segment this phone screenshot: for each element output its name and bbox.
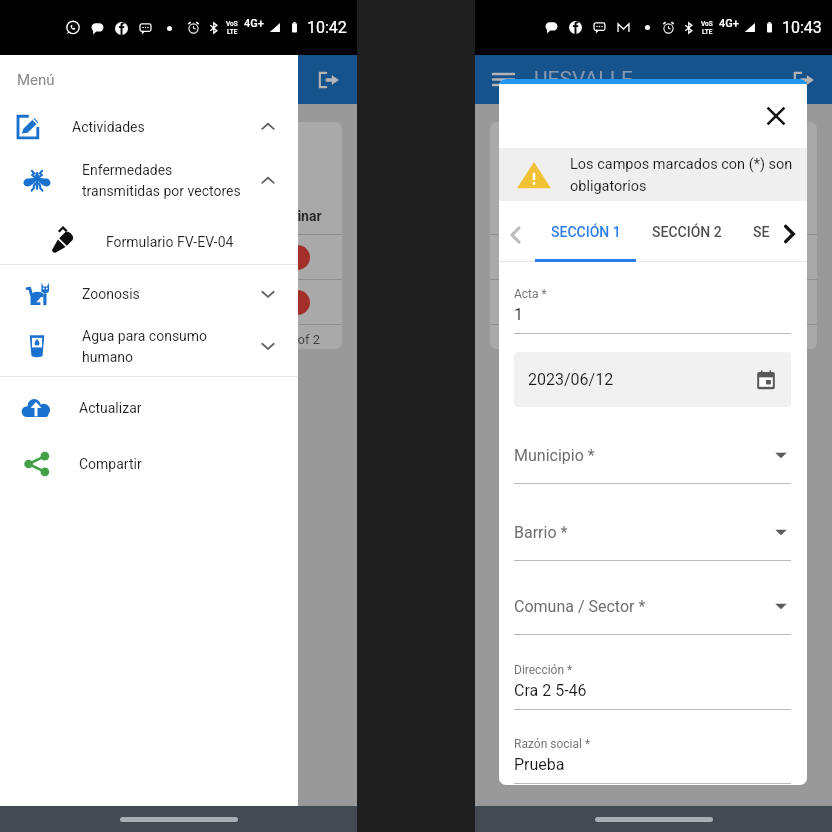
button[interactable]: Close [761, 101, 791, 131]
staticText: VoS [701, 20, 713, 28]
button[interactable]: Actividades [0, 101, 298, 153]
staticText: Compartir [79, 456, 142, 472]
button[interactable]: Logout [791, 68, 815, 92]
button[interactable]: Agua para consumo humano [0, 316, 298, 376]
staticText: LTE [702, 28, 713, 36]
button[interactable]: Razón social * [514, 737, 791, 784]
staticText: SECCIÓN 3 [753, 224, 777, 240]
button[interactable]: Actualizar [0, 380, 298, 436]
staticText: Barrio * [514, 523, 568, 542]
button[interactable]: SECCIÓN 2 [636, 201, 737, 262]
button[interactable]: Dirección * [514, 663, 791, 710]
staticText: LTE [227, 28, 238, 36]
button[interactable]: Formulario FV-EV-04 [0, 218, 298, 266]
staticText: SECCIÓN 1 [551, 224, 621, 240]
staticText: Actualizar [79, 400, 142, 416]
staticText: SECCIÓN 2 [652, 224, 722, 240]
staticText: 4G+ [244, 17, 264, 30]
button[interactable]: Next section [775, 220, 803, 248]
button[interactable]: Logout [316, 68, 340, 92]
button[interactable]: Acta * [514, 287, 791, 334]
staticText: 2023/06/12 [528, 370, 614, 389]
button[interactable]: SECCIÓN 1 [535, 201, 636, 262]
staticText: VoS [226, 20, 238, 28]
staticText: Los campos marcados con (*) son obligato… [570, 156, 797, 194]
staticText: Razón social * [514, 737, 591, 751]
staticText: Dirección * [514, 663, 573, 677]
staticText: Menú [17, 71, 55, 89]
button[interactable]: Previous section [502, 221, 530, 249]
button[interactable]: Menu [491, 67, 516, 92]
staticText: Enfermedades transmitidas por vectores [82, 162, 241, 199]
button[interactable]: Zoonosis [0, 268, 298, 319]
staticText: 10:42 [307, 18, 347, 37]
button[interactable]: Enfermedades transmitidas por vectores [0, 149, 298, 212]
staticText: Zoonosis [82, 286, 140, 302]
button[interactable]: Compartir [0, 436, 298, 492]
staticText: Prueba [514, 755, 565, 774]
staticText: 4G+ [719, 17, 739, 30]
staticText: 10:43 [782, 18, 822, 37]
staticText: Actividades [72, 119, 145, 135]
staticText: Municipio * [514, 446, 595, 465]
button[interactable]: Municipio * [514, 440, 791, 484]
staticText: Formulario FV-EV-04 [106, 234, 234, 250]
staticText: 1 of 2 [287, 332, 320, 347]
staticText: Eliminar [270, 208, 322, 224]
button[interactable]: Comuna / Sector * [514, 591, 791, 635]
button[interactable]: 2023/06/12 [514, 352, 791, 407]
button[interactable]: Barrio * [514, 517, 791, 561]
staticText: 1 of 2 [762, 332, 795, 347]
staticText: Comuna / Sector * [514, 597, 646, 616]
staticText: Cra 2 5-46 [514, 681, 587, 700]
button[interactable]: SECCIÓN 3 [753, 201, 777, 262]
staticText: UESVALLE [534, 67, 633, 92]
staticText: Acta * [514, 287, 547, 301]
staticText: 1 [514, 305, 523, 324]
staticText: Agua para consumo humano [82, 328, 208, 365]
